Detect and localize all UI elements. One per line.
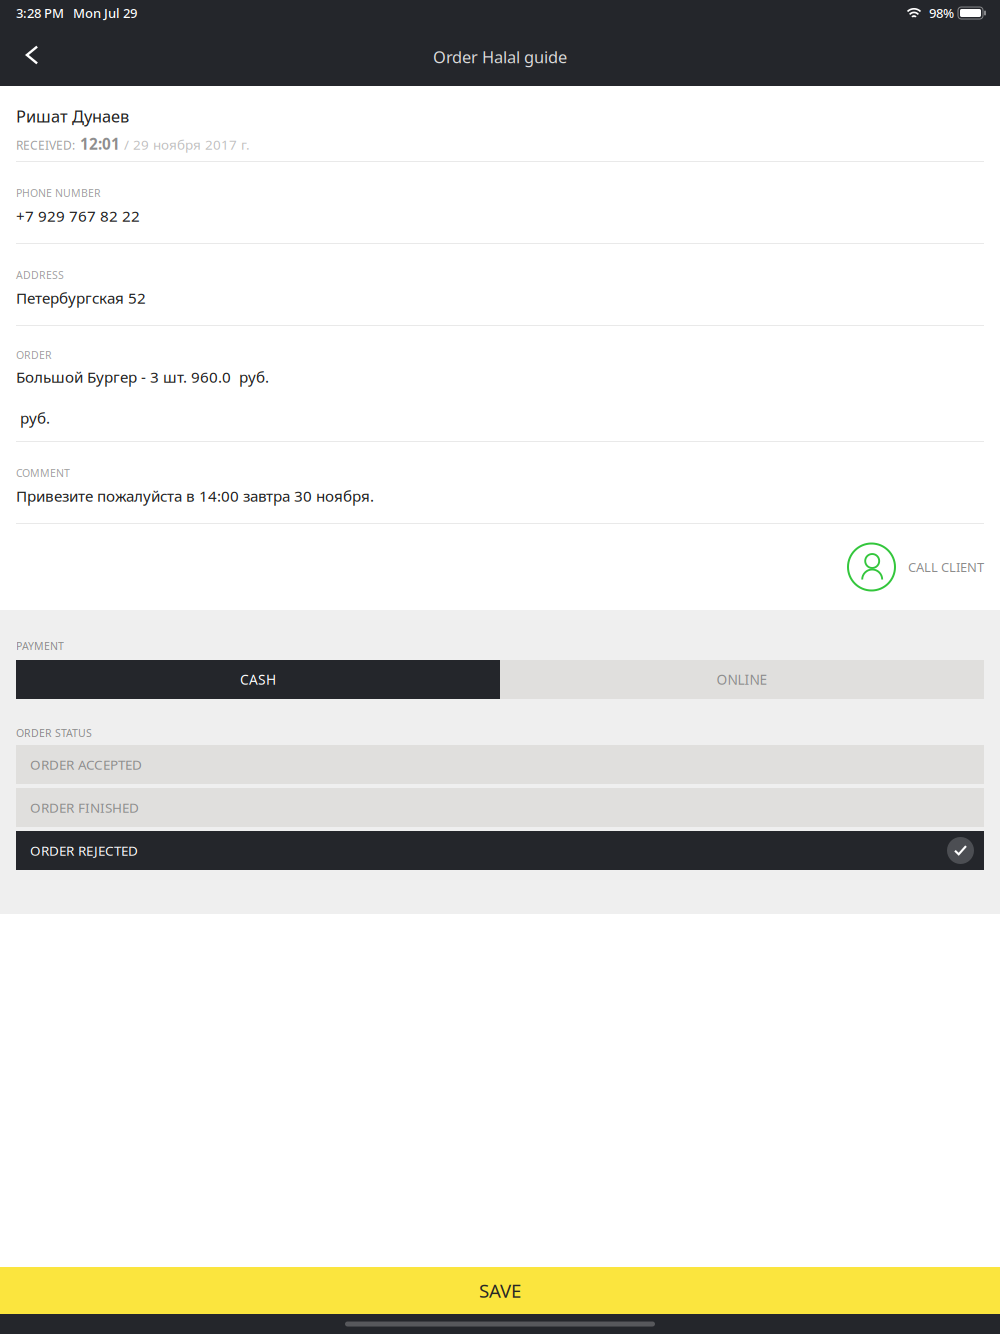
staticText: 12:01 <box>80 134 120 154</box>
staticText: Привезите пожалуйста в 14:00 завтра 30 н… <box>16 486 374 506</box>
staticText: 3:28 PM <box>16 4 64 22</box>
staticText: ORDER <box>16 348 52 362</box>
staticText: ADDRESS <box>16 268 64 282</box>
staticText: CALL CLIENT <box>908 558 984 576</box>
button[interactable]: SAVE <box>0 1267 1000 1314</box>
staticText: PAYMENT <box>16 639 64 653</box>
staticText: ORDER STATUS <box>16 726 92 740</box>
button[interactable]: ORDER ACCEPTED <box>16 745 984 784</box>
staticText: +7 929 767 82 22 <box>16 206 140 226</box>
staticText: CASH <box>240 670 276 689</box>
button[interactable]: ORDER REJECTED <box>16 831 984 870</box>
staticText: / <box>124 136 129 153</box>
button[interactable]: Back <box>0 28 64 86</box>
staticText: COMMENT <box>16 466 70 480</box>
button[interactable]: ONLINE <box>500 660 984 699</box>
staticText: Order Halal guide <box>433 46 567 68</box>
staticText: ONLINE <box>716 670 767 689</box>
staticText: ORDER REJECTED <box>30 842 138 859</box>
staticText: Ришат Дунаев <box>16 105 129 127</box>
staticText: ORDER ACCEPTED <box>30 756 142 773</box>
staticText: ORDER FINISHED <box>30 799 139 816</box>
staticText: руб. <box>16 408 50 428</box>
staticText: Mon Jul 29 <box>73 4 137 22</box>
staticText: PHONE NUMBER <box>16 186 101 200</box>
button[interactable]: ORDER FINISHED <box>16 788 984 827</box>
staticText: 29 ноября 2017 г. <box>133 136 250 153</box>
staticText: SAVE <box>479 1278 521 1303</box>
button[interactable]: CALL CLIENT <box>0 524 1000 610</box>
button[interactable]: CASH <box>16 660 500 699</box>
staticText: Большой Бургер - 3 шт. 960.0 руб. <box>16 367 269 387</box>
staticText: Петербургская 52 <box>16 288 146 308</box>
staticText: RECEIVED: <box>16 137 75 153</box>
staticText: 98% <box>929 4 954 22</box>
